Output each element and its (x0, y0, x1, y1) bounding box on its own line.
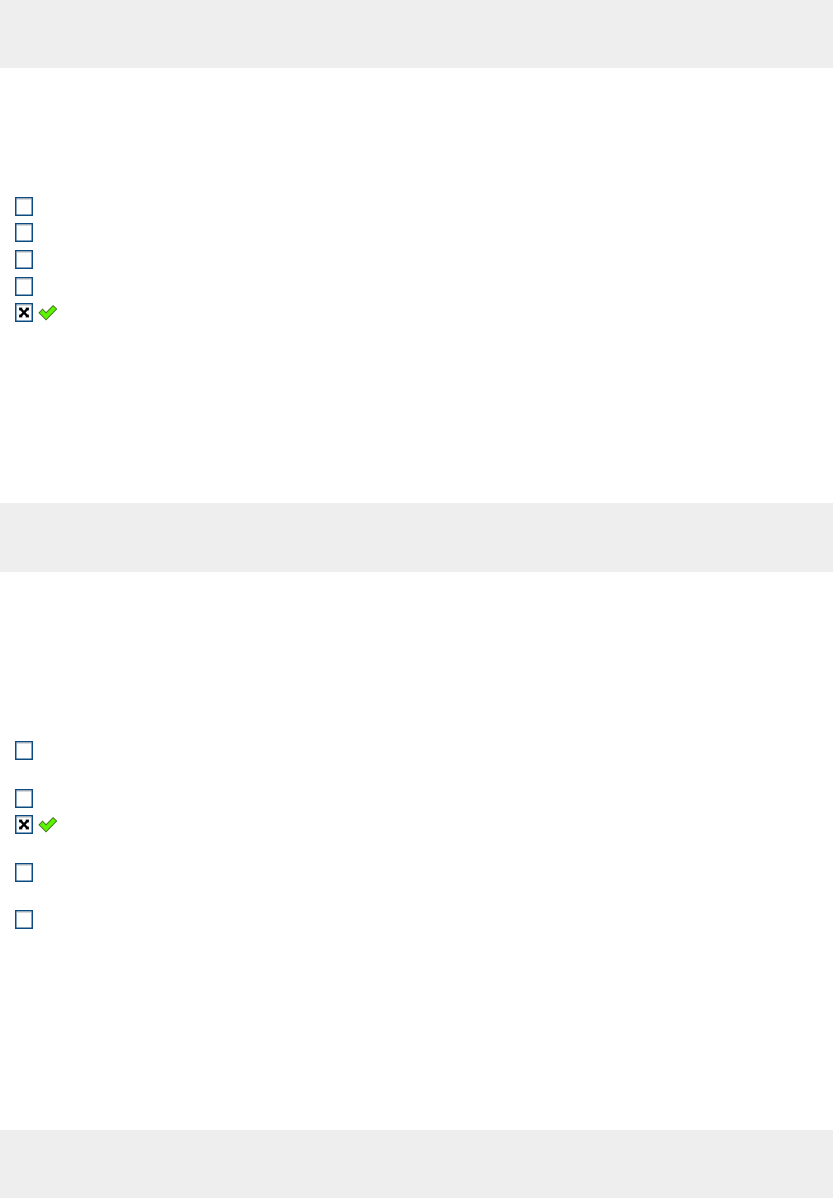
button[interactable]: Option (15, 277, 33, 296)
button[interactable]: Selected option (15, 303, 33, 322)
button[interactable]: Option (15, 789, 33, 808)
button[interactable]: Selected option (15, 815, 33, 834)
button[interactable]: Option (15, 223, 33, 242)
other: Correct answer (40, 818, 56, 832)
button[interactable]: Option (15, 197, 33, 216)
button[interactable]: Option (15, 741, 33, 760)
button[interactable]: Option (15, 250, 33, 269)
other: Correct answer (40, 306, 56, 320)
button[interactable]: Option (15, 863, 33, 882)
button[interactable]: Option (15, 910, 33, 929)
